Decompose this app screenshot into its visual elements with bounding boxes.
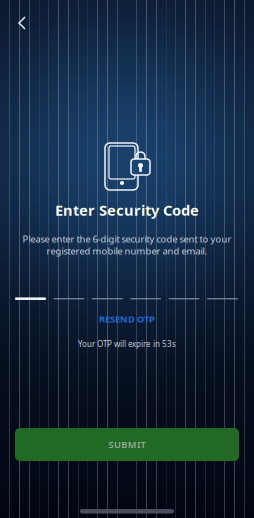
staticText: Please enter the 6-digit security code s… [22, 233, 231, 245]
staticText: RESEND OTP [99, 313, 155, 325]
staticText: Enter Security Code [55, 200, 199, 220]
button[interactable]: Back [6, 8, 36, 38]
button[interactable]: RESEND OTP [0, 311, 254, 327]
staticText: Your OTP will expire in 53s [78, 339, 176, 349]
staticText: registered mobile number and email. [46, 245, 207, 257]
button[interactable]: SUBMIT [15, 428, 239, 461]
staticText: SUBMIT [108, 438, 145, 451]
